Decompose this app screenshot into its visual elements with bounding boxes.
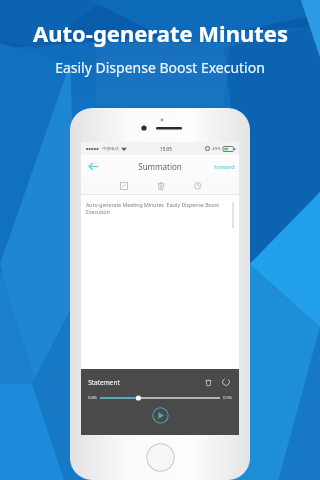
staticText: Summation — [138, 161, 182, 172]
button[interactable]: Home — [146, 443, 175, 472]
staticText: Statement — [88, 378, 120, 387]
staticText: 0:16 — [223, 395, 232, 401]
button[interactable]: Share — [190, 178, 205, 193]
staticText: 中国电信 — [102, 146, 119, 151]
button[interactable]: Edit — [116, 178, 131, 193]
staticText: Easily Dispense Boost Execution — [55, 58, 265, 77]
staticText: 49% — [212, 146, 221, 152]
button[interactable]: Play — [152, 407, 169, 424]
button[interactable]: Delete — [153, 178, 168, 193]
staticText: Auto-generate Minutes — [33, 18, 288, 48]
staticText: Auto-generate Meeting Minutes Easily Dis… — [86, 201, 234, 215]
staticText: 0:06 — [88, 395, 97, 401]
staticText: 15:05 — [160, 146, 172, 152]
button[interactable]: Delete recording — [202, 376, 214, 388]
staticText: forward — [214, 163, 235, 170]
button[interactable]: Refresh — [220, 376, 232, 388]
button[interactable]: forward — [210, 159, 239, 174]
button[interactable]: Back — [85, 158, 101, 174]
